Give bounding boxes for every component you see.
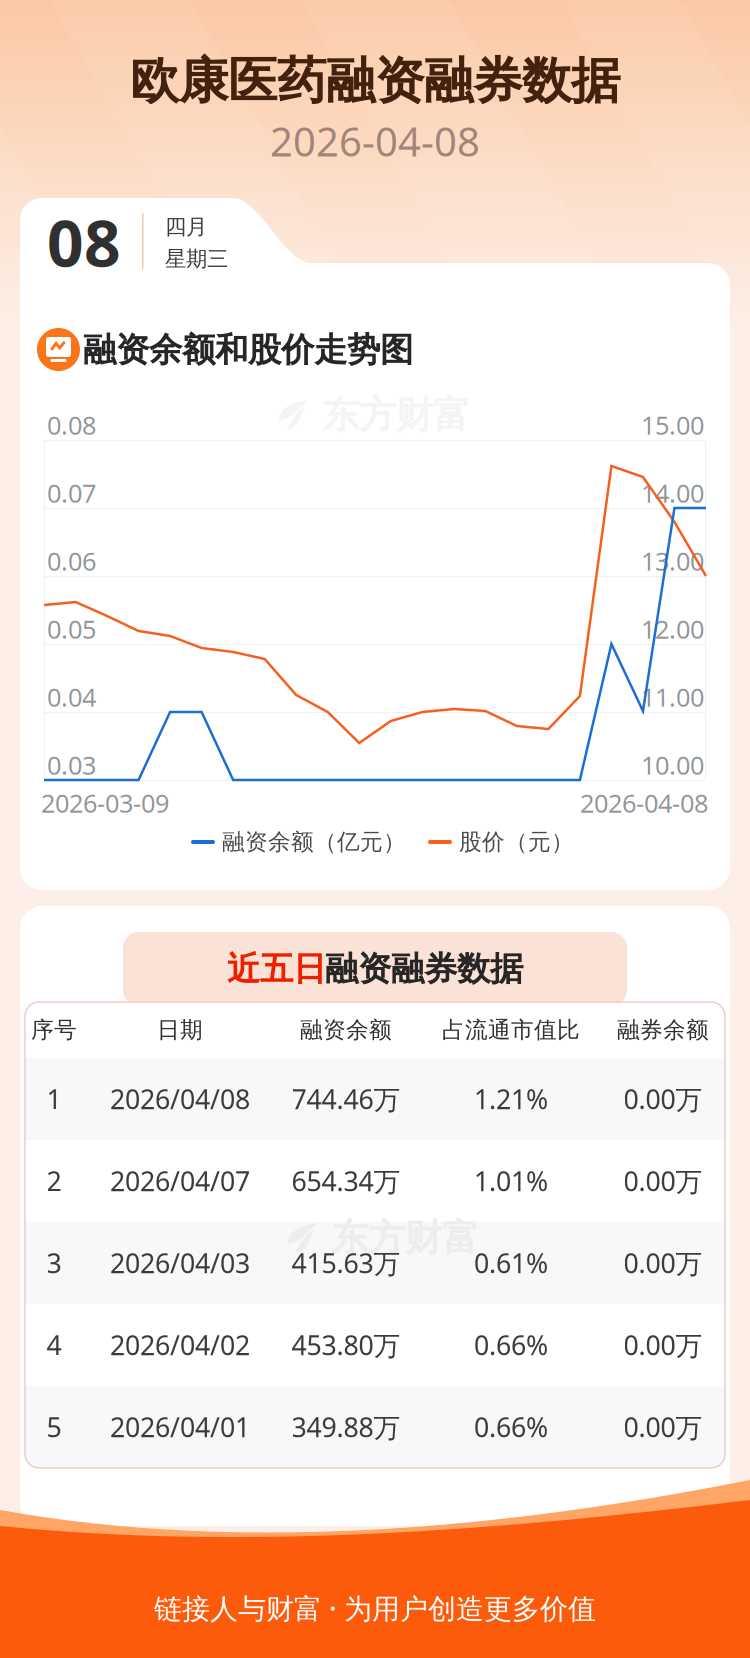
staticText: 08	[47, 199, 121, 284]
staticText: 10.00	[641, 748, 704, 782]
staticText: 星期三	[165, 246, 228, 272]
staticText: 融券余额	[617, 1016, 709, 1044]
staticText: 0.03	[47, 748, 96, 782]
staticText: 0.00万	[623, 1245, 702, 1281]
staticText: 415.63万	[291, 1245, 400, 1281]
staticText: 融资余额	[300, 1016, 392, 1044]
staticText: 链接人与财富 · 为用户创造更多价值	[154, 1589, 596, 1627]
staticText: 2026-04-08	[270, 114, 480, 167]
staticText: 融资融券数据	[325, 948, 523, 989]
staticText: 1.01%	[474, 1163, 548, 1199]
staticText: 3	[46, 1245, 61, 1281]
staticText: 0.06	[47, 544, 96, 578]
staticText: 11.00	[641, 680, 704, 714]
staticText: 0.00万	[623, 1081, 702, 1117]
staticText: 占流通市值比	[442, 1016, 580, 1044]
staticText: 日期	[157, 1016, 203, 1044]
staticText: 2026/04/03	[110, 1245, 250, 1281]
staticText: 东方财富	[322, 392, 470, 438]
staticText: 2026-04-08	[580, 786, 708, 820]
staticText: 0.00万	[623, 1163, 702, 1199]
staticText: 融资余额和股价走势图	[83, 329, 413, 370]
staticText: 2	[46, 1163, 61, 1199]
staticText: 0.00万	[623, 1409, 702, 1445]
staticText: 14.00	[641, 476, 704, 510]
staticText: 东方财富	[331, 1215, 479, 1261]
staticText: 5	[46, 1409, 61, 1445]
staticText: 2026/04/07	[110, 1163, 250, 1199]
staticText: 四月	[165, 214, 207, 240]
staticText: 744.46万	[291, 1081, 400, 1117]
staticText: 4	[46, 1327, 61, 1363]
staticText: 2026-03-09	[41, 786, 169, 820]
staticText: 654.34万	[291, 1163, 400, 1199]
staticText: 2026/04/08	[110, 1081, 250, 1117]
staticText: 0.00万	[623, 1327, 702, 1363]
staticText: 1	[46, 1081, 61, 1117]
staticText: 融资余额（亿元）	[222, 828, 406, 856]
staticText: 2026/04/02	[110, 1327, 250, 1363]
staticText: 453.80万	[291, 1327, 400, 1363]
staticText: 15.00	[641, 408, 704, 442]
staticText: 序号	[31, 1016, 77, 1044]
staticText: 13.00	[641, 544, 704, 578]
staticText: 12.00	[641, 612, 704, 646]
staticText: 0.66%	[474, 1409, 548, 1445]
staticText: 349.88万	[291, 1409, 400, 1445]
staticText: 0.61%	[474, 1245, 548, 1281]
staticText: 欧康医药融资融券数据	[130, 51, 620, 111]
staticText: 2026/04/01	[110, 1409, 250, 1445]
staticText: 0.07	[47, 476, 96, 510]
staticText: 0.08	[47, 408, 96, 442]
staticText: 0.66%	[474, 1327, 548, 1363]
staticText: 股价（元）	[459, 828, 574, 856]
staticText: 1.21%	[474, 1081, 548, 1117]
staticText: 0.04	[47, 680, 96, 714]
staticText: 近五日	[227, 948, 326, 989]
staticText: 0.05	[47, 612, 96, 646]
